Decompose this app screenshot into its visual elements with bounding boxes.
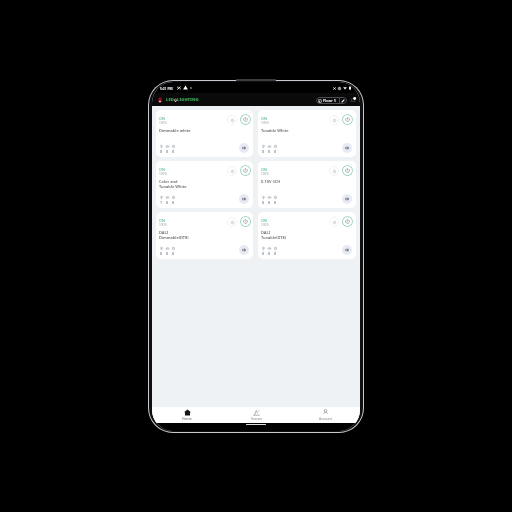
button[interactable]: ON xyxy=(156,161,253,208)
staticText: 100% xyxy=(261,223,269,227)
staticText: 0 xyxy=(166,251,169,256)
staticText: LIGHTING xyxy=(177,97,199,103)
staticText: ON xyxy=(159,116,165,121)
staticText: ON xyxy=(159,218,165,223)
staticText: 0 xyxy=(274,149,277,154)
staticText: Dimmable(DT8) xyxy=(159,235,189,240)
staticText: 0 xyxy=(160,251,163,256)
button[interactable]: Power xyxy=(240,114,251,125)
button[interactable]: Notifications xyxy=(349,96,357,104)
staticText: Tunable(DT8) xyxy=(261,235,287,240)
staticText: Tunable White xyxy=(261,128,289,133)
staticText: ON xyxy=(261,218,267,223)
staticText: 0 xyxy=(166,149,169,154)
staticText: 100% xyxy=(261,121,269,125)
staticText: 1 xyxy=(160,200,163,205)
button[interactable]: Schedule xyxy=(329,217,339,227)
staticText: ON xyxy=(261,167,267,172)
button[interactable]: Schedule xyxy=(227,217,237,227)
staticText: 0 xyxy=(268,149,271,154)
staticText: 0 xyxy=(172,200,175,205)
staticText: ON xyxy=(261,116,267,121)
button[interactable]: Schedule xyxy=(227,115,237,125)
button[interactable]: Power xyxy=(240,165,251,176)
button[interactable]: Devices xyxy=(342,194,352,204)
staticText: Dimmable white xyxy=(159,128,191,133)
button[interactable]: ON xyxy=(156,212,253,259)
button[interactable]: Devices xyxy=(239,245,249,255)
staticText: 0 xyxy=(172,251,175,256)
staticText: 0 xyxy=(262,149,265,154)
staticText: 100% xyxy=(159,172,167,176)
staticText: 0 xyxy=(160,149,163,154)
staticText: 0 xyxy=(268,200,271,205)
button[interactable]: ON xyxy=(258,161,356,208)
staticText: Floor 1 xyxy=(323,98,337,103)
button[interactable]: Devices xyxy=(239,143,249,153)
staticText: 100% xyxy=(261,172,269,176)
staticText: Account xyxy=(319,416,332,421)
button[interactable]: Account xyxy=(291,407,360,423)
staticText: LED xyxy=(166,97,174,103)
staticText: 100% xyxy=(159,223,167,227)
staticText: 0 xyxy=(172,149,175,154)
staticText: 0 xyxy=(166,200,169,205)
staticText: 0 xyxy=(268,251,271,256)
button[interactable]: Home xyxy=(152,407,222,423)
staticText: Scenes xyxy=(251,416,263,421)
button[interactable]: ON xyxy=(258,212,356,259)
staticText: 0 xyxy=(262,200,265,205)
staticText: 100% xyxy=(159,121,167,125)
button[interactable]: Scenes xyxy=(222,407,291,423)
staticText: 0-10V 3CH xyxy=(261,179,281,184)
staticText: DALI xyxy=(261,230,271,235)
button[interactable]: ON xyxy=(156,110,253,157)
staticText: Home xyxy=(182,416,192,421)
button[interactable]: Power xyxy=(342,165,353,176)
staticText: 0 xyxy=(262,251,265,256)
button[interactable]: Devices xyxy=(342,245,352,255)
staticText: DALI xyxy=(159,230,169,235)
button[interactable]: Power xyxy=(240,216,251,227)
button[interactable]: ON xyxy=(258,110,356,157)
staticText: ON xyxy=(159,167,165,172)
button[interactable]: Schedule xyxy=(329,166,339,176)
button[interactable]: Power xyxy=(342,216,353,227)
button[interactable]: Power xyxy=(342,114,353,125)
button[interactable]: Devices xyxy=(342,143,352,153)
staticText: 0 xyxy=(274,200,277,205)
button[interactable]: Floor 1 xyxy=(316,97,347,104)
button[interactable]: Devices xyxy=(239,194,249,204)
staticText: 0 xyxy=(274,251,277,256)
button[interactable]: Schedule xyxy=(329,115,339,125)
staticText: 5:21 PM xyxy=(160,86,173,90)
staticText: Tunable White xyxy=(159,184,187,189)
staticText: Color and xyxy=(159,179,178,184)
button[interactable]: Schedule xyxy=(227,166,237,176)
